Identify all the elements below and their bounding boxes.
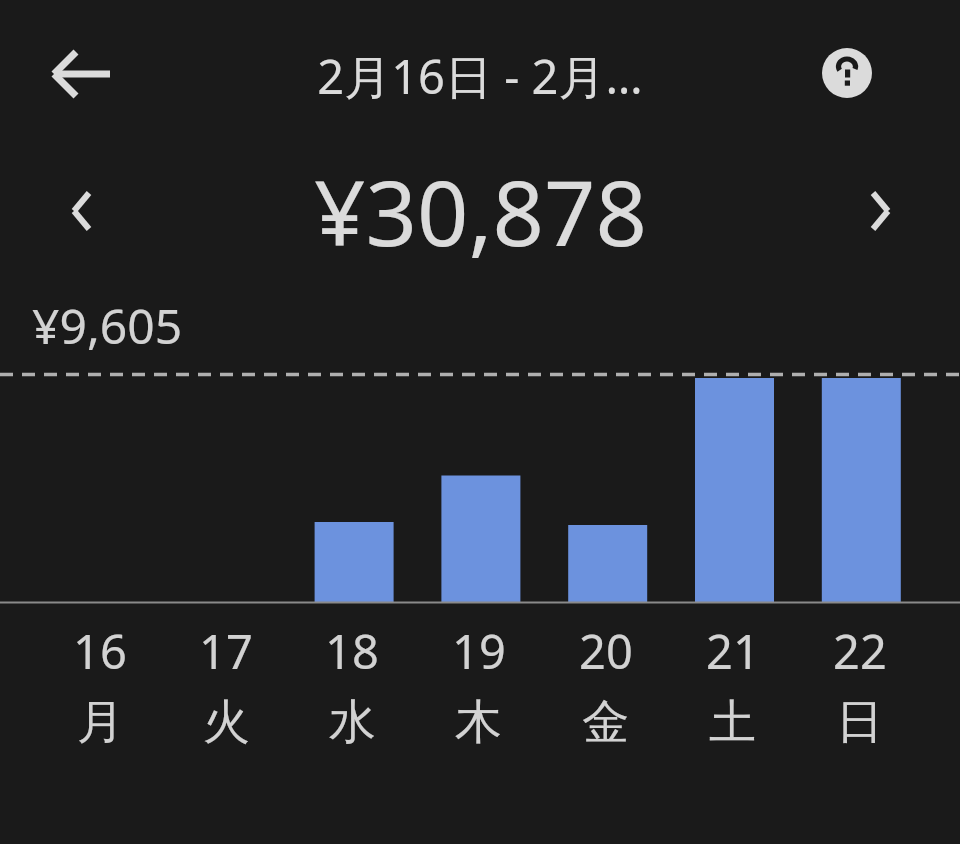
staticText: 水: [329, 693, 376, 752]
staticText: 19: [452, 619, 506, 683]
button[interactable]: 21: [669, 614, 796, 774]
staticText: 22: [833, 619, 887, 683]
button[interactable]: 22: [796, 614, 923, 774]
button[interactable]: 19: [415, 614, 542, 774]
staticText: 金: [582, 693, 629, 752]
button[interactable]: Next week: [844, 175, 916, 247]
staticText: 土: [709, 693, 756, 752]
button[interactable]: 2月16日 - 2月…: [317, 44, 643, 108]
button[interactable]: 20: [542, 614, 669, 774]
staticText: 20: [579, 619, 633, 683]
staticText: 火: [203, 693, 250, 752]
staticText: 21: [706, 619, 760, 683]
staticText: 木: [455, 693, 502, 752]
staticText: 月: [77, 693, 124, 752]
staticText: 16: [73, 619, 127, 683]
button[interactable]: Previous week: [46, 175, 118, 247]
staticText: ¥9,605: [32, 293, 183, 358]
button[interactable]: Help: [812, 38, 882, 108]
button[interactable]: 16: [37, 614, 163, 774]
staticText: 2月16日 - 2月…: [317, 44, 643, 108]
button[interactable]: ¥30,878: [314, 150, 647, 273]
staticText: 日: [836, 693, 883, 752]
staticText: 17: [199, 619, 253, 683]
button[interactable]: 17: [163, 614, 289, 774]
staticText: 18: [325, 619, 379, 683]
button[interactable]: 18: [289, 614, 415, 774]
staticText: ¥30,878: [314, 150, 647, 273]
button[interactable]: Back: [48, 40, 116, 108]
